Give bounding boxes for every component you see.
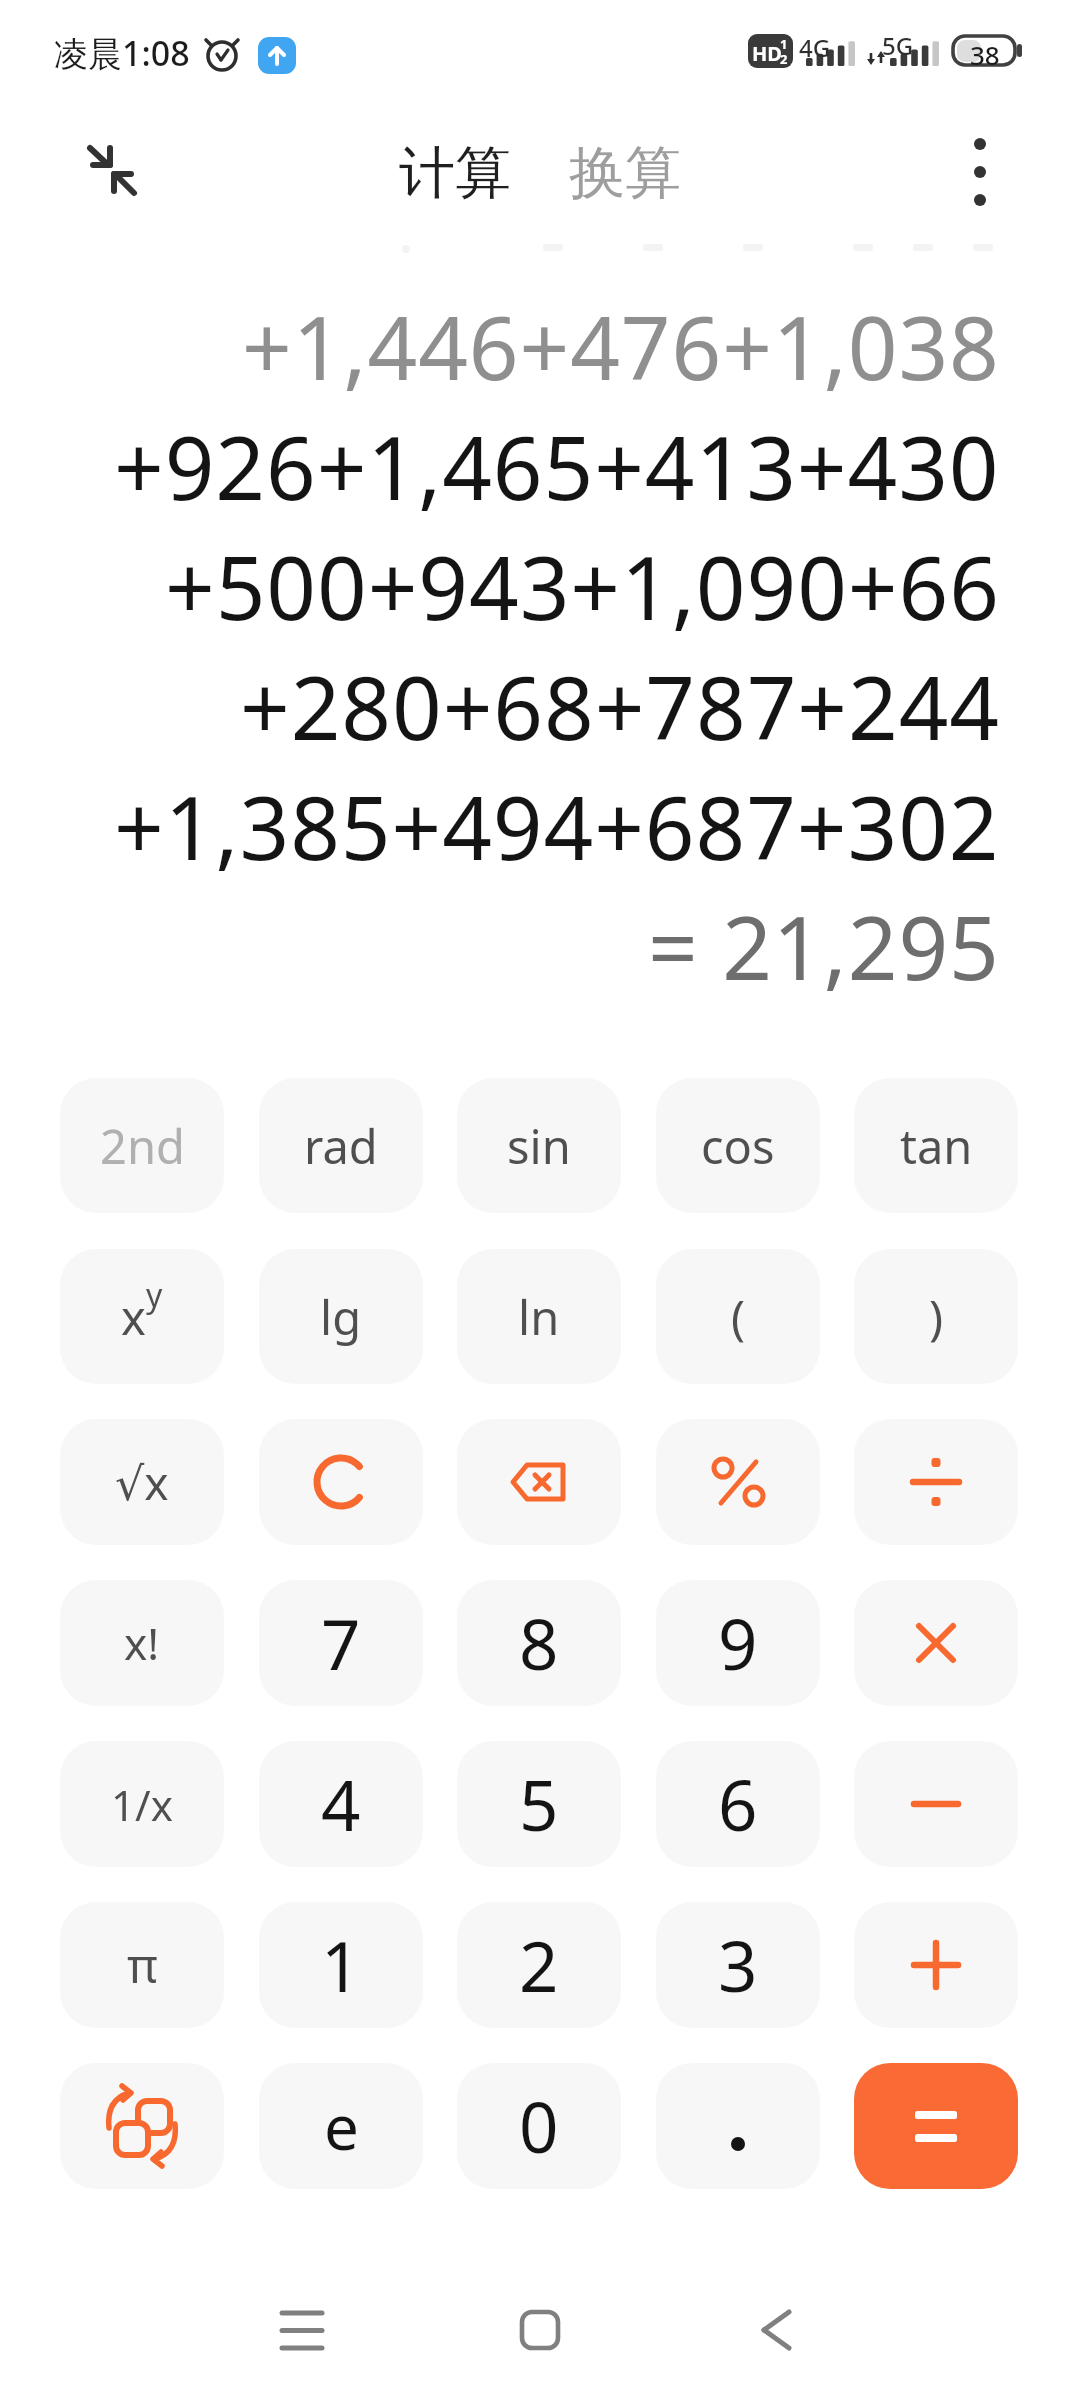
staticText: 0	[519, 2079, 559, 2173]
button[interactable]: 9	[656, 1580, 820, 1706]
button[interactable]	[272, 2295, 332, 2365]
staticText: 2	[780, 50, 788, 68]
staticText: sin	[507, 1114, 571, 1178]
staticText: 2nd	[100, 1114, 185, 1178]
staticText: 5G	[882, 29, 914, 62]
button[interactable]	[259, 1419, 423, 1545]
button[interactable]: 0	[457, 2063, 621, 2189]
staticText: 换算	[569, 138, 681, 209]
button[interactable]: sin	[457, 1078, 621, 1213]
staticText: 计算	[399, 138, 511, 209]
button[interactable]: 8	[457, 1580, 621, 1706]
button[interactable]: 计算	[399, 138, 511, 209]
button[interactable]: √x	[60, 1419, 224, 1545]
staticText: 38	[970, 37, 1000, 72]
staticText: 2	[519, 1918, 559, 2012]
button[interactable]	[940, 130, 1020, 210]
button[interactable]	[656, 1419, 820, 1545]
staticText: (	[731, 1285, 746, 1349]
button[interactable]	[457, 1419, 621, 1545]
staticText: tan	[900, 1114, 973, 1178]
staticText: 1	[780, 35, 788, 53]
button[interactable]: 3	[656, 1902, 820, 2028]
staticText: ln	[518, 1285, 560, 1349]
button[interactable]: 4	[259, 1741, 423, 1867]
button[interactable]	[656, 2063, 820, 2189]
staticText: 凌晨1:08	[54, 30, 190, 76]
staticText: y	[146, 1273, 163, 1317]
button[interactable]: 2nd	[60, 1078, 224, 1213]
staticText: )	[929, 1285, 944, 1349]
button[interactable]: π	[60, 1902, 224, 2028]
staticText: 1/x	[111, 1776, 173, 1833]
button[interactable]	[854, 1902, 1018, 2028]
button[interactable]: )	[854, 1249, 1018, 1384]
staticText: x	[121, 1285, 146, 1349]
button[interactable]	[854, 2063, 1018, 2189]
staticText: cos	[701, 1114, 775, 1178]
staticText: +1,446+476+1,038	[242, 287, 1000, 405]
staticText: +280+68+787+244	[240, 647, 1000, 765]
staticText: = 21,295	[648, 887, 1000, 1005]
button[interactable]: 7	[259, 1580, 423, 1706]
staticText: +926+1,465+413+430	[114, 407, 1000, 525]
button[interactable]	[70, 130, 150, 210]
button[interactable]	[60, 2063, 224, 2189]
staticText: 4G	[799, 31, 831, 64]
button[interactable]: lg	[259, 1249, 423, 1384]
staticText: rad	[304, 1114, 378, 1178]
staticText: HD	[752, 40, 782, 67]
button[interactable]: tan	[854, 1078, 1018, 1213]
staticText: 5	[519, 1757, 559, 1851]
staticText: 1	[321, 1918, 361, 2012]
staticText: 6	[718, 1757, 758, 1851]
button[interactable]: rad	[259, 1078, 423, 1213]
staticText: 4	[321, 1757, 361, 1851]
button[interactable]: e	[259, 2063, 423, 2189]
button[interactable]: cos	[656, 1078, 820, 1213]
button[interactable]	[854, 1580, 1018, 1706]
staticText: lg	[320, 1285, 362, 1349]
button[interactable]: 换算	[569, 138, 681, 209]
button[interactable]: 6	[656, 1741, 820, 1867]
staticText: e	[324, 2084, 359, 2168]
staticText: x!	[124, 1613, 160, 1673]
button[interactable]: ln	[457, 1249, 621, 1384]
button[interactable]: 2	[457, 1902, 621, 2028]
button[interactable]: 1/x	[60, 1741, 224, 1867]
button[interactable]: 5	[457, 1741, 621, 1867]
button[interactable]: (	[656, 1249, 820, 1384]
staticText: +500+943+1,090+66	[165, 527, 1000, 645]
staticText: 3	[718, 1918, 758, 2012]
staticText: +1,385+494+687+302	[114, 767, 1000, 885]
button[interactable]: x!	[60, 1580, 224, 1706]
staticText: π	[127, 1933, 158, 1997]
staticText: 9	[718, 1596, 758, 1690]
staticText: 8	[519, 1596, 559, 1690]
button[interactable]	[510, 2295, 570, 2365]
staticText: 7	[321, 1596, 361, 1690]
button[interactable]	[854, 1419, 1018, 1545]
staticText: √x	[115, 1451, 169, 1514]
button[interactable]: 1	[259, 1902, 423, 2028]
button[interactable]	[854, 1741, 1018, 1867]
button[interactable]	[750, 2295, 810, 2365]
button[interactable]: x	[60, 1249, 224, 1384]
